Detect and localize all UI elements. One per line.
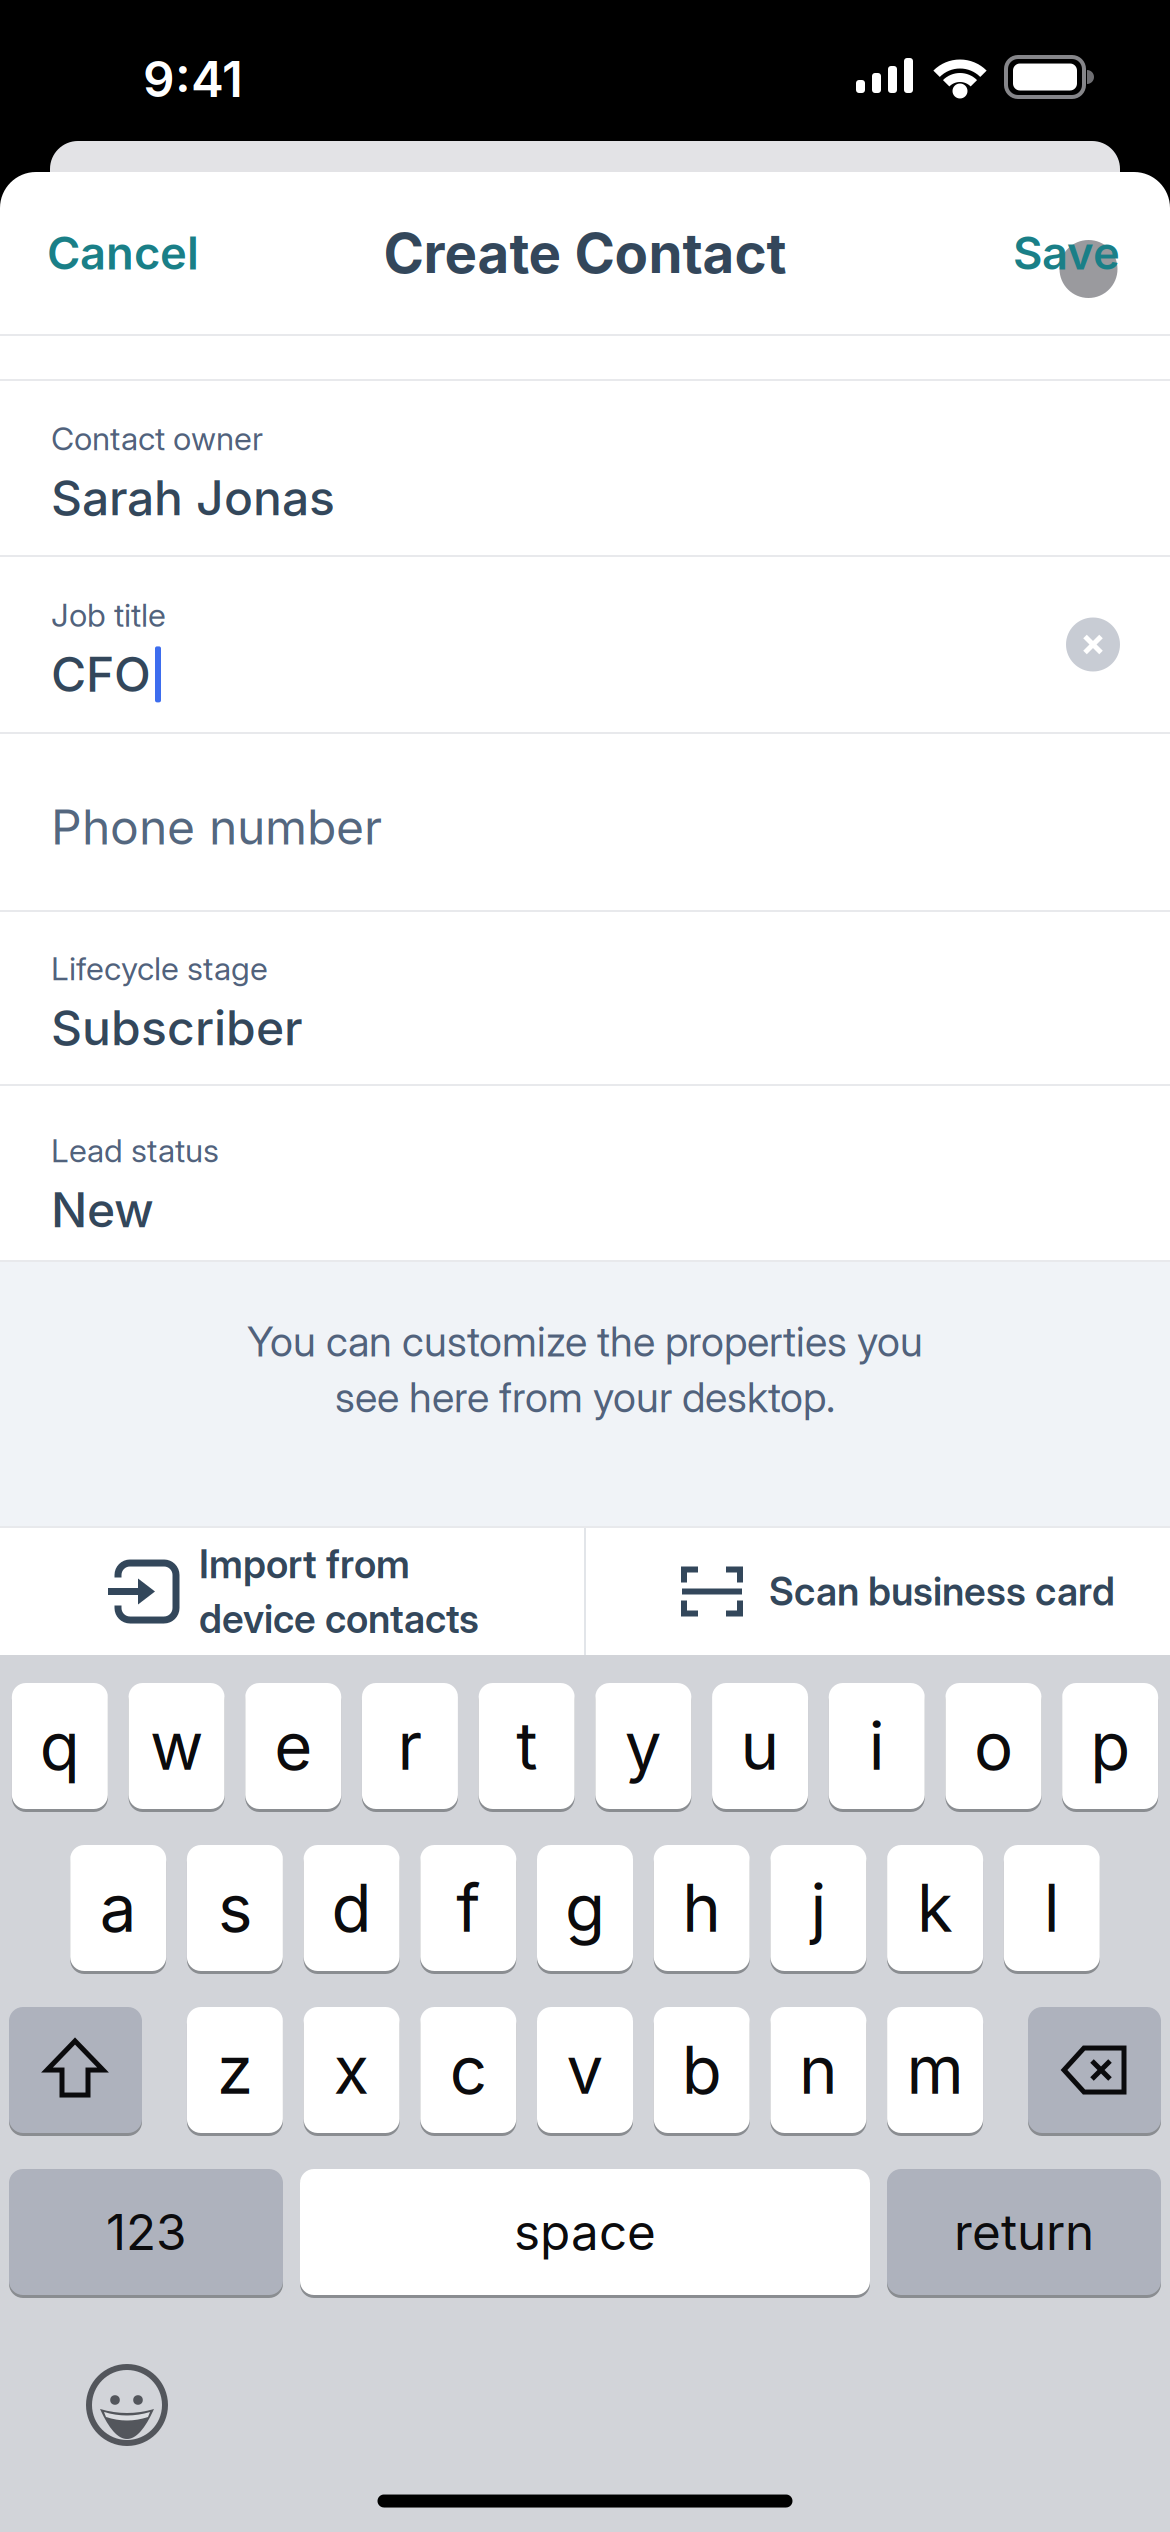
button[interactable]: Shift	[9, 2007, 142, 2133]
staticText: Lifecycle stage	[51, 950, 268, 988]
staticText: c	[450, 2031, 487, 2109]
button[interactable]: Delete	[1028, 2007, 1161, 2133]
button[interactable]: i	[829, 1683, 925, 1809]
staticText: y	[625, 1707, 662, 1785]
staticText: n	[799, 2031, 838, 2109]
staticText: Job title	[51, 596, 166, 634]
button[interactable]: t	[479, 1683, 575, 1809]
staticText: Cancel	[47, 226, 199, 280]
staticText: f	[456, 1869, 480, 1947]
button[interactable]: space	[300, 2169, 870, 2295]
staticText: Lead status	[51, 1132, 219, 1170]
staticText: i	[869, 1707, 885, 1785]
staticText: Scan business card	[769, 1569, 1115, 1614]
button[interactable]: q	[12, 1683, 108, 1809]
staticText: w	[150, 1707, 203, 1785]
staticText: x	[334, 2031, 370, 2109]
staticText: u	[741, 1707, 780, 1785]
staticText: l	[1044, 1869, 1060, 1947]
button[interactable]: h	[654, 1845, 750, 1971]
button[interactable]: b	[654, 2007, 750, 2133]
staticText: r	[397, 1707, 422, 1785]
button[interactable]: Lead status	[0, 1086, 1170, 1260]
staticText: o	[974, 1707, 1013, 1785]
button[interactable]: Save	[1013, 194, 1170, 312]
staticText: k	[917, 1869, 953, 1947]
button[interactable]: g	[537, 1845, 633, 1971]
staticText: Contact owner	[51, 420, 263, 458]
button[interactable]: r	[362, 1683, 458, 1809]
staticText: s	[218, 1869, 252, 1947]
button[interactable]: Scan business card	[586, 1528, 1170, 1655]
staticText: q	[40, 1707, 80, 1785]
staticText: p	[1090, 1707, 1130, 1785]
staticText: e	[274, 1707, 312, 1785]
button[interactable]: l	[1004, 1845, 1100, 1971]
staticText: b	[682, 2031, 722, 2109]
button[interactable]: Job title	[0, 557, 1170, 732]
staticText: Subscriber	[51, 1000, 303, 1056]
staticText: h	[682, 1869, 721, 1947]
button[interactable]: z	[187, 2007, 283, 2133]
staticText: m	[907, 2031, 964, 2109]
staticText: New	[51, 1182, 154, 1238]
staticText: z	[217, 2031, 253, 2109]
button[interactable]: Phone number	[0, 734, 1170, 910]
staticText: Save	[1013, 226, 1120, 280]
button[interactable]: y	[595, 1683, 691, 1809]
staticText: return	[954, 2203, 1094, 2261]
button[interactable]: v	[537, 2007, 633, 2133]
button[interactable]: Emoji	[89, 2367, 165, 2443]
staticText: a	[100, 1869, 137, 1947]
button[interactable]: w	[129, 1683, 225, 1809]
button[interactable]: c	[420, 2007, 516, 2133]
button[interactable]: f	[420, 1845, 516, 1971]
staticText: g	[565, 1869, 605, 1947]
button[interactable]: o	[945, 1683, 1041, 1809]
staticText: Sarah Jonas	[51, 470, 335, 526]
button[interactable]: x	[304, 2007, 400, 2133]
button[interactable]: Contact owner	[0, 381, 1170, 555]
staticText: d	[332, 1869, 372, 1947]
button[interactable]: e	[245, 1683, 341, 1809]
staticText: see here from your desktop.	[335, 1373, 835, 1422]
button[interactable]: a	[70, 1845, 166, 1971]
button[interactable]: d	[304, 1845, 400, 1971]
staticText: Phone number	[51, 799, 382, 855]
staticText: You can customize the properties you	[247, 1317, 923, 1366]
button[interactable]: Import from	[0, 1528, 584, 1655]
staticText: CFO	[51, 646, 151, 703]
staticText: device contacts	[199, 1596, 479, 1642]
staticText: 123	[106, 2203, 186, 2261]
button[interactable]: m	[887, 2007, 983, 2133]
button[interactable]: u	[712, 1683, 808, 1809]
button[interactable]: j	[770, 1845, 866, 1971]
staticText: 9:41	[143, 50, 243, 108]
staticText: Create Contact	[383, 221, 786, 285]
staticText: t	[516, 1707, 537, 1785]
button[interactable]: Cancel	[0, 196, 199, 310]
button[interactable]: Lifecycle stage	[0, 912, 1170, 1084]
staticText: j	[810, 1869, 826, 1947]
button[interactable]: Clear text	[1066, 617, 1120, 671]
button[interactable]: s	[187, 1845, 283, 1971]
staticText: v	[566, 2031, 603, 2109]
button[interactable]: 123	[9, 2169, 283, 2295]
button[interactable]: return	[887, 2169, 1161, 2295]
staticText: Import from	[199, 1541, 410, 1587]
staticText: space	[514, 2203, 656, 2261]
button[interactable]: k	[887, 1845, 983, 1971]
button[interactable]: p	[1062, 1683, 1158, 1809]
button[interactable]: n	[770, 2007, 866, 2133]
